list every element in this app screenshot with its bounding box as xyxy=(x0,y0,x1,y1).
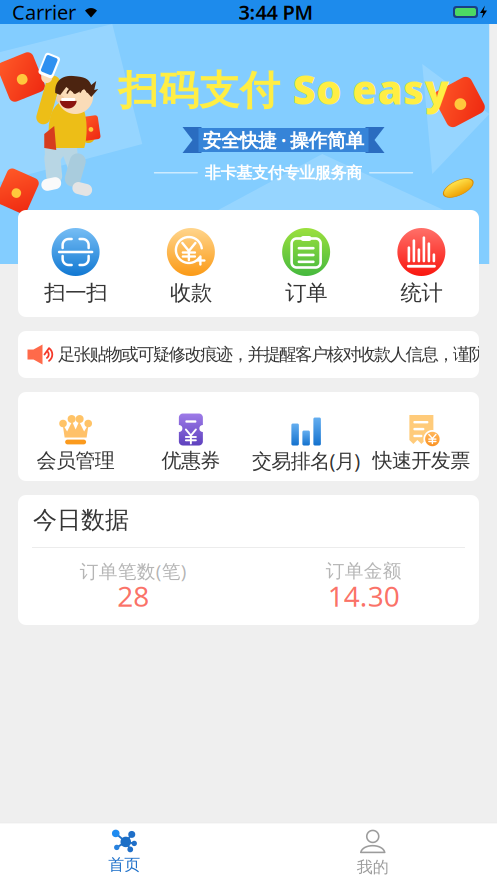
button[interactable]: 会员管理 xyxy=(18,415,133,471)
button[interactable]: 我的 xyxy=(248,823,497,883)
button[interactable]: 订单 xyxy=(248,228,364,304)
button[interactable]: 扫一扫 xyxy=(18,228,133,304)
button[interactable]: 统计 xyxy=(364,228,479,304)
staticText: 订单 xyxy=(285,280,327,306)
button[interactable]: 快速开发票 xyxy=(364,415,479,471)
staticText: 今日数据 xyxy=(33,505,129,535)
button[interactable]: 首页 xyxy=(0,826,248,881)
staticText: 我的 xyxy=(357,857,389,877)
staticText: 非卡基支付专业服务商 xyxy=(205,163,362,183)
button[interactable]: 交易排名(月) xyxy=(248,415,364,471)
staticText: 快速开发票 xyxy=(373,448,470,473)
button[interactable]: 收款 xyxy=(133,228,248,304)
staticText: 扫一扫 xyxy=(44,280,107,306)
staticText: 订单笔数(笔) xyxy=(80,559,187,583)
staticText: 首页 xyxy=(108,855,140,875)
staticText: 优惠券 xyxy=(161,448,220,473)
staticText: 安全快捷 · 操作简单 xyxy=(202,128,364,152)
staticText: Carrier xyxy=(12,0,76,25)
staticText: 3:44 PM xyxy=(238,0,313,25)
staticText: 会员管理 xyxy=(36,448,115,473)
staticText: 14.30 xyxy=(328,577,400,615)
staticText: 足张贴物或可疑修改痕迹，并提醒客户核对收款人信息，谨防收款 xyxy=(58,344,497,365)
staticText: 统计 xyxy=(400,280,442,306)
staticText: 交易排名(月) xyxy=(252,447,360,474)
staticText: 订单金额 xyxy=(326,559,402,582)
button[interactable]: 足张贴物或可疑修改痕迹，并提醒客户核对收款人信息，谨防收款 xyxy=(18,331,479,378)
staticText: 28 xyxy=(117,577,149,615)
staticText: 扫码支付 So easy xyxy=(118,62,449,115)
button[interactable]: 优惠券 xyxy=(133,415,248,471)
staticText: 收款 xyxy=(170,280,212,306)
